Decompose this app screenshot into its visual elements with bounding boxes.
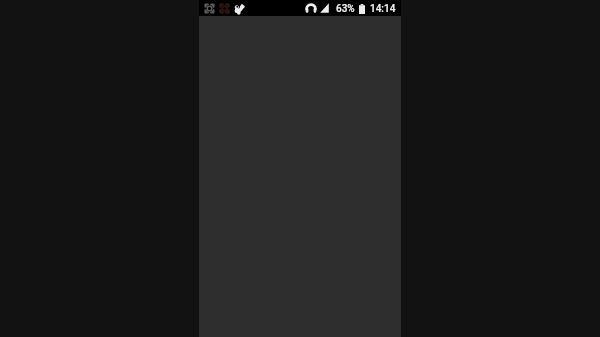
button[interactable]: Screen recorder notification: [204, 3, 215, 14]
other: Headset connected: [305, 3, 317, 14]
staticText: 14:14: [370, 3, 396, 15]
button[interactable]: Developer tools notification: [234, 3, 245, 14]
button[interactable]: Screen capture notification: [219, 3, 230, 14]
button[interactable]: Status bar: [199, 0, 401, 16]
staticText: 63%: [336, 3, 355, 15]
other: Mobile signal: [320, 3, 329, 13]
other: Battery 63 percent: [359, 4, 365, 14]
button[interactable]: App content: [199, 0, 401, 337]
